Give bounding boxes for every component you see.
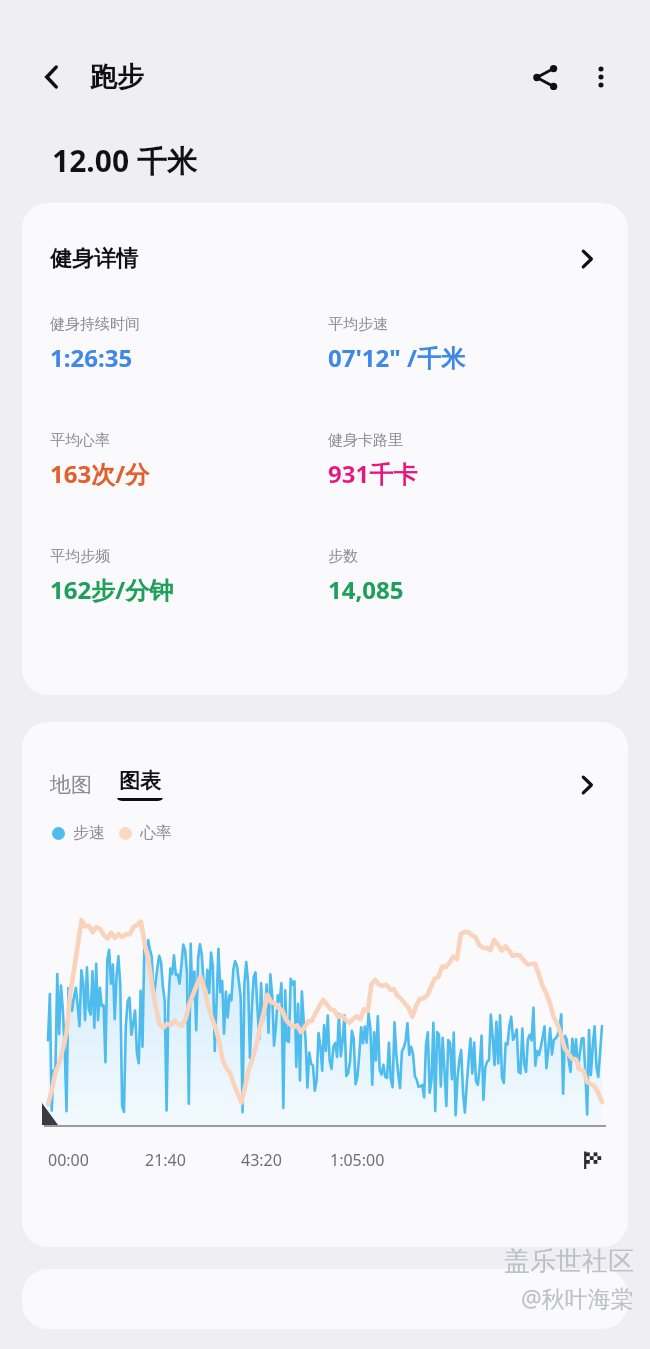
staticText: 地图	[50, 772, 92, 798]
staticText: 图表	[119, 768, 161, 794]
staticText: @秋叶海棠	[521, 1282, 634, 1313]
button[interactable]: 地图	[50, 772, 92, 798]
staticText: 心率	[140, 823, 172, 843]
staticText: 21:40	[145, 1149, 186, 1171]
staticText: 931千卡	[328, 457, 418, 490]
staticText: 平均步频	[50, 547, 110, 566]
staticText: 步速	[73, 823, 105, 843]
staticText: 00:00	[48, 1149, 89, 1171]
staticText: 07'12" /千米	[328, 341, 465, 374]
button[interactable]: 图表	[116, 768, 164, 801]
staticText: 平均步速	[328, 315, 388, 334]
staticText: 163次/分	[50, 457, 150, 490]
button[interactable]: Back	[30, 55, 74, 99]
button[interactable]: More options	[578, 54, 624, 100]
staticText: 健身卡路里	[328, 431, 403, 450]
staticText: 健身持续时间	[50, 315, 140, 334]
staticText: 1:26:35	[50, 341, 133, 374]
staticText: 12.00 千米	[52, 140, 197, 181]
staticText: 14,085	[328, 573, 404, 606]
staticText: 平均心率	[50, 431, 110, 450]
staticText: 步数	[328, 547, 358, 566]
staticText: 43:20	[241, 1149, 282, 1171]
staticText: 盖乐世社区	[504, 1245, 634, 1278]
button[interactable]	[22, 1269, 628, 1329]
staticText: 1:05:00	[330, 1149, 385, 1171]
staticText: 健身详情	[50, 245, 138, 273]
button[interactable]: Share	[518, 50, 572, 104]
staticText: 跑步	[90, 60, 144, 94]
button[interactable]: 健身详情	[22, 203, 628, 695]
staticText: 162步/分钟	[50, 573, 174, 606]
